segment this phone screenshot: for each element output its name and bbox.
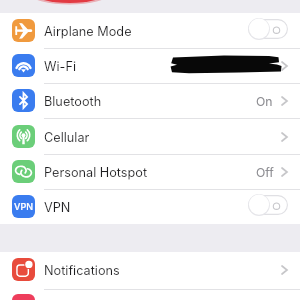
button[interactable]: Toggle bbox=[248, 195, 288, 215]
staticText: Wi-Fi bbox=[44, 59, 76, 74]
button[interactable]: VPN bbox=[0, 189, 300, 224]
staticText: Cellular bbox=[44, 130, 90, 145]
staticText: Airplane Mode bbox=[44, 24, 132, 39]
button[interactable]: Airplane Mode bbox=[0, 13, 300, 48]
button[interactable]: Notifications bbox=[0, 252, 300, 289]
staticText: VPN bbox=[14, 201, 33, 212]
staticText: VPN bbox=[44, 200, 71, 215]
button[interactable]: Personal Hotspot bbox=[0, 154, 300, 189]
button[interactable]: Wi-Fi bbox=[0, 48, 300, 83]
staticText: Bluetooth bbox=[44, 94, 102, 109]
staticText: Notifications bbox=[44, 263, 120, 278]
staticText: On bbox=[256, 94, 273, 109]
staticText: Off bbox=[256, 165, 274, 180]
button[interactable]: Cellular bbox=[0, 119, 300, 154]
button[interactable]: Bluetooth bbox=[0, 83, 300, 118]
staticText: Personal Hotspot bbox=[44, 165, 148, 180]
button[interactable]: Toggle bbox=[248, 19, 288, 39]
